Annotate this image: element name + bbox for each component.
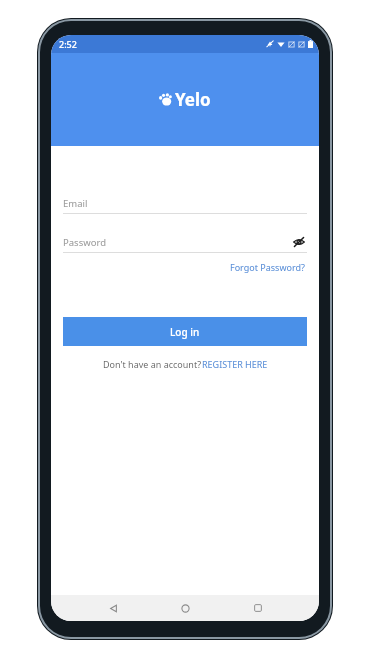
button[interactable]: Forgot Password?: [228, 259, 307, 275]
staticText: Don't have an account?: [103, 358, 202, 370]
button[interactable]: Home: [174, 597, 196, 619]
button[interactable]: Log in: [63, 317, 307, 346]
staticText: Yelo: [175, 88, 211, 111]
button[interactable]: Recent apps: [247, 597, 269, 619]
button[interactable]: Password: [63, 232, 307, 252]
button[interactable]: Email: [63, 193, 307, 213]
staticText: Forgot Password?: [230, 261, 305, 273]
staticText: Email: [63, 197, 88, 210]
staticText: REGISTER HERE: [202, 358, 268, 370]
staticText: Log in: [170, 325, 200, 339]
button[interactable]: REGISTER HERE: [202, 358, 268, 370]
staticText: 2:52: [59, 38, 77, 50]
button[interactable]: Back: [102, 597, 124, 619]
button[interactable]: Show password: [291, 234, 307, 250]
staticText: Password: [63, 236, 106, 249]
